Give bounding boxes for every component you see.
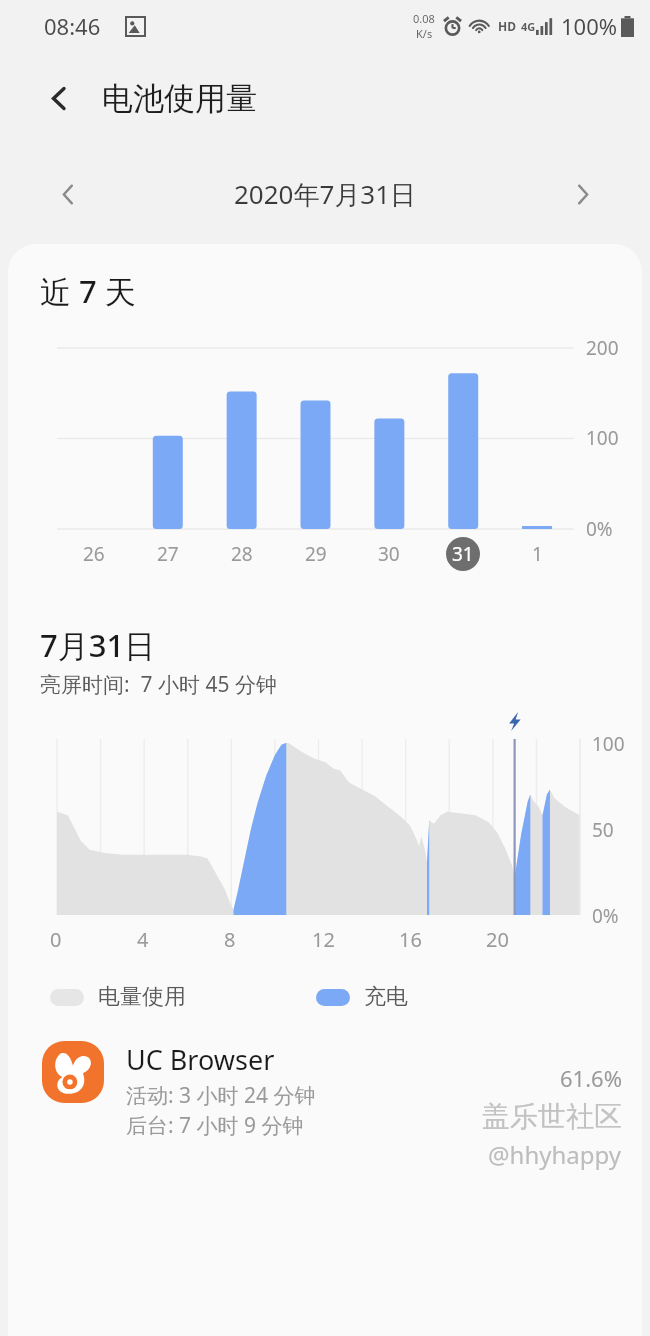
staticText: 亮屏时间: 7 小时 45 分钟	[40, 670, 277, 699]
staticText: 0%	[592, 903, 619, 929]
staticText: 28	[231, 541, 253, 567]
staticText: HD	[498, 18, 516, 34]
staticText: 8	[224, 926, 236, 953]
staticText: 0%	[586, 516, 613, 542]
button[interactable]: Previous day	[44, 170, 92, 218]
staticText: 1	[532, 541, 543, 567]
button[interactable]: 26	[77, 537, 111, 571]
staticText: 20	[486, 926, 509, 953]
staticText: 充电	[364, 983, 408, 1011]
staticText: 2020年7月31日	[92, 176, 558, 212]
staticText: 后台: 7 小时 9 分钟	[126, 1111, 304, 1140]
button[interactable]: 31	[446, 537, 480, 571]
button[interactable]: 27	[151, 537, 185, 571]
staticText: 61.6%	[560, 1063, 622, 1093]
staticText: 200	[586, 335, 619, 361]
staticText: 盖乐世社区	[482, 1099, 622, 1134]
button[interactable]: 29	[299, 537, 333, 571]
staticText: 7月31日	[40, 624, 156, 666]
staticText: 电池使用量	[102, 79, 257, 118]
staticText: 电量使用	[98, 983, 186, 1011]
staticText: 50	[592, 817, 614, 843]
staticText: 12	[312, 926, 335, 953]
staticText: 100	[586, 425, 619, 451]
staticText: 16	[399, 926, 422, 953]
staticText: 4G	[521, 19, 536, 34]
button[interactable]: UC Browser	[8, 1033, 642, 1171]
button[interactable]: 电量使用	[50, 983, 186, 1011]
staticText: 100	[592, 731, 625, 757]
staticText: 0.08	[413, 11, 435, 26]
staticText: 近 7 天	[40, 270, 136, 312]
button[interactable]: Next day	[558, 170, 606, 218]
button[interactable]: Back	[34, 73, 84, 123]
staticText: 29	[305, 541, 327, 567]
staticText: 31	[452, 541, 474, 567]
staticText: 08:46	[44, 11, 101, 41]
button[interactable]: 28	[225, 537, 259, 571]
staticText: 4	[137, 926, 149, 953]
button[interactable]: 1	[520, 537, 554, 571]
staticText: 0	[50, 926, 62, 953]
button[interactable]: 充电	[316, 983, 408, 1011]
button[interactable]: 30	[372, 537, 406, 571]
staticText: 27	[157, 541, 179, 567]
staticText: @hhyhappy	[488, 1138, 622, 1171]
staticText: 26	[83, 541, 105, 567]
staticText: UC Browser	[126, 1041, 275, 1078]
staticText: 30	[378, 541, 400, 567]
staticText: K/s	[416, 26, 433, 41]
staticText: 100%	[561, 11, 618, 41]
staticText: 活动: 3 小时 24 分钟	[126, 1081, 316, 1110]
